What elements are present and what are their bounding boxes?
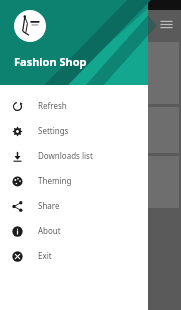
button[interactable]: About (0, 218, 148, 243)
button[interactable] (2, 42, 179, 104)
staticText: Fashion Shop (14, 54, 87, 69)
staticText: Settings (38, 125, 69, 136)
button[interactable]: Refresh (0, 93, 148, 118)
button[interactable]: Fashion Shop logo (14, 10, 46, 42)
staticText: Downloads list (38, 150, 93, 161)
button[interactable]: er (4, 192, 26, 205)
button[interactable]: gem An (2, 156, 179, 208)
button[interactable]: Fashion Shop logo (0, 0, 148, 85)
staticText: Share (38, 200, 60, 211)
button[interactable]: Settings (0, 118, 148, 143)
button[interactable]: Open navigation menu (157, 15, 175, 33)
staticText: Exit (38, 250, 52, 261)
button[interactable]: Downloads list (0, 143, 148, 168)
staticText: gem An (6, 182, 29, 190)
staticText: About (38, 225, 61, 236)
staticText: er (12, 194, 19, 204)
staticText: Refresh (38, 100, 67, 111)
button[interactable]: Share (0, 193, 148, 218)
button[interactable] (2, 107, 179, 153)
button[interactable]: Theming (0, 168, 148, 193)
button[interactable]: Exit (0, 243, 148, 268)
staticText: Theming (38, 175, 72, 186)
